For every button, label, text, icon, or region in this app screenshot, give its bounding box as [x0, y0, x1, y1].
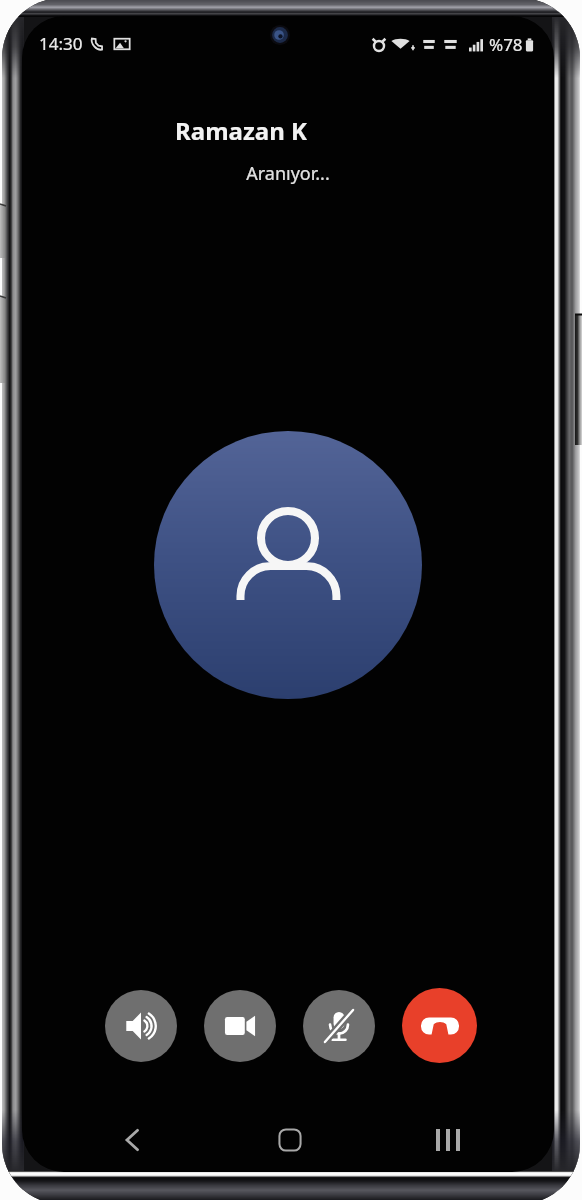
staticText: %78	[489, 33, 523, 56]
button[interactable]: Mute	[303, 990, 375, 1062]
staticText: 14:30	[39, 32, 83, 55]
button[interactable]: End call	[402, 988, 477, 1063]
button[interactable]: Recent apps	[404, 1112, 492, 1168]
staticText: Ramazan K	[22, 114, 507, 147]
button[interactable]: Speaker	[105, 990, 177, 1062]
staticText: Aranıyor...	[22, 161, 554, 186]
button[interactable]: Back	[88, 1112, 176, 1168]
button[interactable]: Home	[246, 1112, 334, 1168]
button[interactable]: Video	[204, 990, 276, 1062]
